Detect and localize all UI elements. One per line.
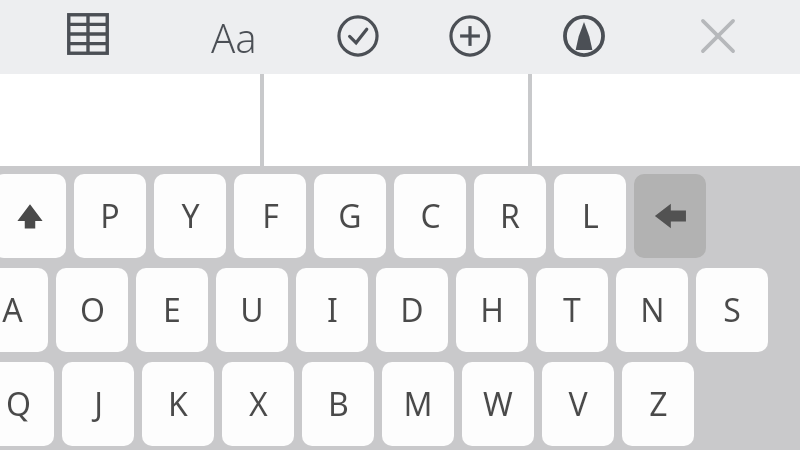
staticText: Q — [6, 382, 31, 426]
button[interactable]: H — [456, 268, 528, 352]
button[interactable]: Insert — [442, 8, 498, 64]
staticText: H — [480, 288, 504, 332]
staticText: M — [403, 382, 433, 426]
button[interactable]: X — [222, 362, 294, 446]
staticText: I — [327, 288, 338, 332]
button[interactable]: D — [376, 268, 448, 352]
button[interactable]: Backspace — [634, 174, 706, 258]
button[interactable]: A — [0, 268, 48, 352]
staticText: U — [240, 288, 264, 332]
staticText: Y — [181, 194, 200, 238]
button[interactable]: V — [542, 362, 614, 446]
button[interactable]: I — [296, 268, 368, 352]
button[interactable]: Aa — [196, 8, 272, 66]
staticText: K — [168, 382, 188, 426]
button[interactable]: R — [474, 174, 546, 258]
staticText: J — [94, 382, 103, 426]
button[interactable]: U — [216, 268, 288, 352]
button[interactable]: G — [314, 174, 386, 258]
staticText: C — [420, 194, 441, 238]
staticText: B — [328, 382, 349, 426]
staticText: Z — [649, 382, 668, 426]
button[interactable]: W — [462, 362, 534, 446]
staticText: F — [262, 194, 279, 238]
staticText: G — [338, 194, 362, 238]
button[interactable]: J — [62, 362, 134, 446]
staticText: V — [568, 382, 588, 426]
button[interactable]: Table — [62, 8, 114, 60]
button[interactable]: Y — [154, 174, 226, 258]
button[interactable]: L — [554, 174, 626, 258]
button[interactable]: F — [234, 174, 306, 258]
button[interactable]: E — [136, 268, 208, 352]
button[interactable]: Shift — [0, 174, 66, 258]
staticText: D — [400, 288, 424, 332]
staticText: A — [2, 288, 23, 332]
button[interactable]: T — [536, 268, 608, 352]
button[interactable]: B — [302, 362, 374, 446]
staticText: N — [640, 288, 665, 332]
staticText: X — [249, 382, 268, 426]
staticText: E — [163, 288, 181, 332]
button[interactable]: Close — [690, 8, 746, 64]
staticText: O — [80, 288, 105, 332]
staticText: R — [500, 194, 520, 238]
button[interactable]: P — [74, 174, 146, 258]
staticText: S — [723, 288, 741, 332]
button[interactable]: Done — [330, 8, 386, 64]
staticText: W — [483, 382, 513, 426]
button[interactable]: K — [142, 362, 214, 446]
button[interactable]: N — [616, 268, 688, 352]
staticText: Aa — [211, 10, 257, 64]
button[interactable]: Z — [622, 362, 694, 446]
button[interactable]: Draw — [556, 8, 612, 64]
staticText: P — [100, 194, 120, 238]
staticText: L — [582, 194, 599, 238]
button[interactable]: C — [394, 174, 466, 258]
button[interactable]: M — [382, 362, 454, 446]
button[interactable]: S — [696, 268, 768, 352]
staticText: T — [563, 288, 581, 332]
button[interactable]: Q — [0, 362, 54, 446]
button[interactable]: O — [56, 268, 128, 352]
